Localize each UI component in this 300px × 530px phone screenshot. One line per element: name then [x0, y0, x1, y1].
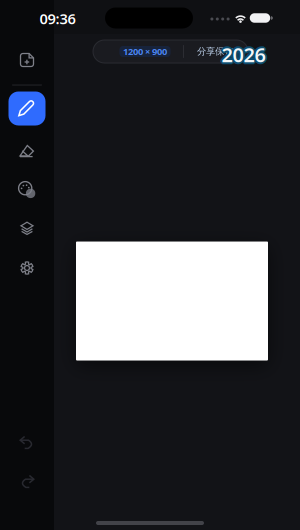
staticText: 2026: [221, 43, 265, 70]
button[interactable]: Settings: [8, 253, 46, 283]
button[interactable]: Erase: [8, 136, 46, 166]
staticText: 2026: [220, 43, 264, 69]
button[interactable]: Draw: [8, 91, 45, 125]
button[interactable]: Redo: [8, 467, 46, 497]
staticText: 09:36: [39, 9, 75, 28]
button[interactable]: Layers: [8, 213, 46, 243]
staticText: 2026: [223, 43, 267, 69]
button[interactable]: New document: [8, 45, 46, 75]
staticText: 2026: [221, 41, 265, 68]
staticText: 2026: [223, 40, 267, 66]
staticText: 分享保存: [197, 46, 233, 57]
button[interactable]: Colors: [8, 175, 46, 205]
staticText: 2026: [220, 41, 264, 68]
staticText: 2026: [223, 41, 267, 68]
button[interactable]: 分享保存: [195, 41, 235, 61]
staticText: 2026: [221, 39, 265, 66]
staticText: 2026: [220, 40, 264, 66]
staticText: 1200 × 900: [123, 45, 167, 58]
button[interactable]: Undo: [8, 428, 46, 458]
